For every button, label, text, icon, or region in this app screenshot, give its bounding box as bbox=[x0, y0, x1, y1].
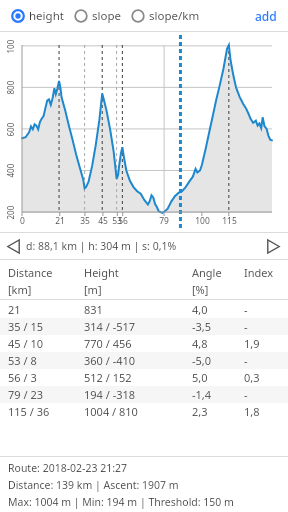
staticText: 115 bbox=[222, 215, 237, 227]
staticText: Angle bbox=[192, 265, 222, 280]
button[interactable]: add bbox=[244, 3, 288, 29]
staticText: 56 / 3 bbox=[8, 370, 37, 385]
staticText: 21 bbox=[8, 302, 21, 317]
staticText: 21 bbox=[55, 215, 65, 227]
button[interactable]: 56 / 3 bbox=[0, 369, 288, 386]
staticText: 115 / 36 bbox=[8, 404, 50, 419]
staticText: Max: 1004 m | Min: 194 m | Threshold: 15… bbox=[8, 495, 234, 509]
staticText: Height bbox=[84, 265, 119, 280]
staticText: 314 / -517 bbox=[84, 319, 136, 334]
staticText: slope/km bbox=[149, 8, 200, 24]
staticText: 100 bbox=[195, 215, 210, 227]
staticText: 1,8 bbox=[244, 404, 260, 419]
button[interactable]: 45 / 10 bbox=[0, 335, 288, 352]
button[interactable]: Elevation profile chart bbox=[0, 33, 288, 230]
button[interactable]: 115 / 36 bbox=[0, 403, 288, 420]
staticText: 53 bbox=[112, 215, 122, 227]
staticText: height bbox=[29, 8, 64, 24]
staticText: [km] bbox=[8, 282, 32, 297]
staticText: 45 bbox=[98, 215, 108, 227]
staticText: 4,8 bbox=[192, 336, 208, 351]
staticText: 79 / 23 bbox=[8, 387, 43, 402]
staticText: 360 / -410 bbox=[84, 353, 136, 368]
staticText: 600 bbox=[4, 122, 15, 136]
staticText: - bbox=[244, 387, 248, 402]
staticText: Distance bbox=[8, 265, 53, 280]
button[interactable]: Next marker bbox=[260, 233, 286, 259]
button[interactable]: slope/km bbox=[129, 4, 202, 28]
staticText: 1004 / 810 bbox=[84, 404, 138, 419]
staticText: - bbox=[244, 319, 248, 334]
staticText: -5,0 bbox=[192, 353, 212, 368]
staticText: 56 bbox=[118, 215, 128, 227]
staticText: 400 bbox=[4, 163, 15, 177]
staticText: 770 / 456 bbox=[84, 336, 132, 351]
button[interactable]: slope bbox=[72, 4, 123, 28]
staticText: 79 bbox=[159, 215, 169, 227]
staticText: 0 bbox=[20, 215, 25, 227]
staticText: 512 / 152 bbox=[84, 370, 132, 385]
staticText: [m] bbox=[84, 282, 102, 297]
button[interactable]: Previous marker bbox=[0, 233, 26, 259]
staticText: -1,4 bbox=[192, 387, 212, 402]
staticText: [%] bbox=[192, 282, 209, 297]
staticText: 35 bbox=[80, 215, 90, 227]
staticText: 831 bbox=[84, 302, 103, 317]
staticText: 4,0 bbox=[192, 302, 208, 317]
staticText: Index bbox=[244, 265, 274, 280]
staticText: 45 / 10 bbox=[8, 336, 43, 351]
staticText: 100 bbox=[4, 39, 15, 53]
staticText: 200 bbox=[4, 205, 15, 219]
staticText: d: 88,1 km | h: 304 m | s: 0,1% bbox=[26, 239, 177, 253]
button[interactable]: 35 / 15 bbox=[0, 318, 288, 335]
staticText: 800 bbox=[4, 80, 15, 94]
staticText: 1,9 bbox=[244, 336, 260, 351]
button[interactable]: 79 / 23 bbox=[0, 386, 288, 403]
staticText: slope bbox=[92, 8, 121, 24]
staticText: add bbox=[255, 8, 277, 24]
staticText: Route: 2018-02-23 21:27 bbox=[8, 461, 128, 475]
staticText: Distance: 139 km | Ascent: 1907 m bbox=[8, 478, 179, 492]
button[interactable]: 53 / 8 bbox=[0, 352, 288, 369]
staticText: - bbox=[244, 302, 248, 317]
staticText: 194 / -318 bbox=[84, 387, 136, 402]
staticText: -3,5 bbox=[192, 319, 212, 334]
staticText: 0,3 bbox=[244, 370, 260, 385]
staticText: 5,0 bbox=[192, 370, 208, 385]
staticText: - bbox=[244, 353, 248, 368]
staticText: 35 / 15 bbox=[8, 319, 43, 334]
staticText: 53 / 8 bbox=[8, 353, 37, 368]
button[interactable]: height bbox=[9, 4, 66, 28]
staticText: 2,3 bbox=[192, 404, 208, 419]
button[interactable]: 21 bbox=[0, 301, 288, 318]
